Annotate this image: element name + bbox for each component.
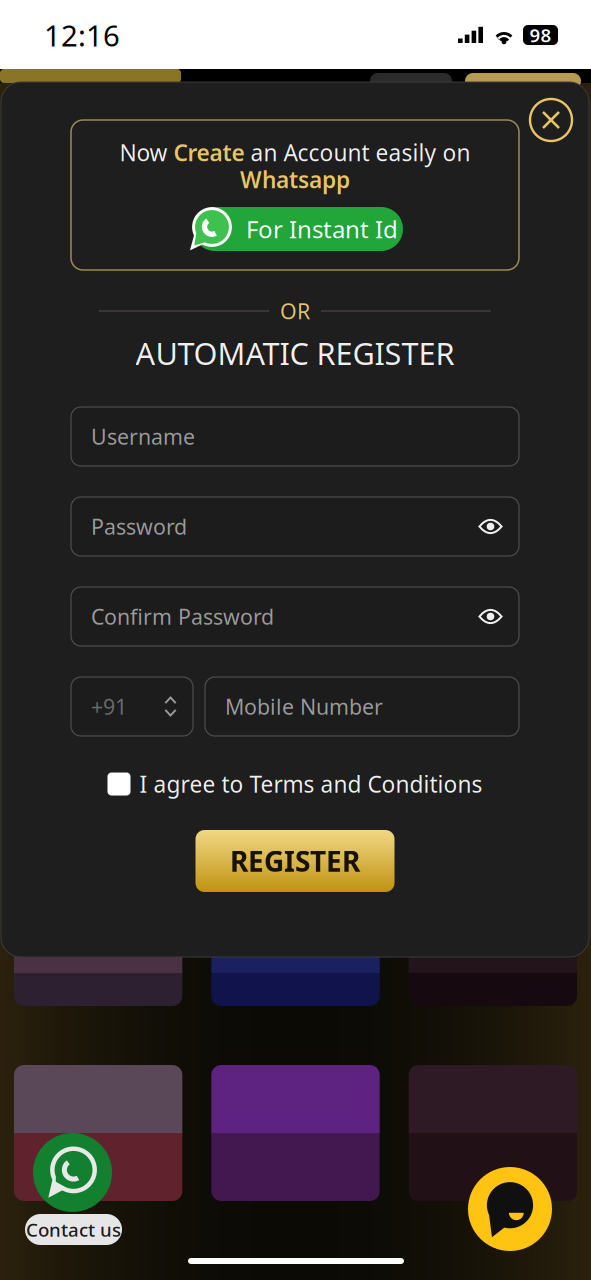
- staticText: an Account easily on: [244, 137, 470, 167]
- button[interactable]: Casino game: [211, 1065, 380, 1201]
- staticText: Mobile Number: [225, 692, 383, 721]
- button[interactable]: Casino game: [14, 940, 182, 1006]
- button[interactable]: Chat on WhatsApp: [33, 1133, 112, 1212]
- staticText: Confirm Password: [91, 602, 274, 631]
- button[interactable]: I agree to Terms and Conditions: [107, 766, 482, 802]
- staticText: +91: [91, 692, 127, 721]
- button[interactable]: Casino game: [409, 1065, 577, 1201]
- staticText: OR: [280, 297, 310, 325]
- button[interactable]: Casino game: [409, 940, 577, 1006]
- button[interactable]: Open support chat: [468, 1167, 552, 1251]
- staticText: I agree to Terms and Conditions: [139, 769, 482, 799]
- staticText: Password: [91, 512, 187, 541]
- staticText: 12:16: [44, 15, 120, 54]
- button[interactable]: REGISTER: [195, 830, 394, 892]
- button[interactable]: Show password: [478, 517, 503, 535]
- staticText: Username: [91, 422, 195, 451]
- staticText: Whatsapp: [240, 164, 350, 194]
- button[interactable]: Show password: [478, 607, 503, 625]
- button[interactable]: Casino game: [211, 940, 380, 1006]
- button[interactable]: Contact us: [25, 1214, 122, 1245]
- staticText: 98: [529, 23, 551, 47]
- staticText: Now: [119, 137, 173, 167]
- staticText: Create: [173, 137, 244, 167]
- staticText: For Instant Id: [246, 213, 398, 245]
- button[interactable]: For Instant Id: [188, 207, 403, 251]
- staticText: REGISTER: [230, 842, 360, 880]
- button[interactable]: Close: [530, 99, 572, 141]
- staticText: AUTOMATIC REGISTER: [135, 333, 454, 373]
- button[interactable]: Casino game: [14, 1065, 182, 1201]
- staticText: Contact us: [26, 1217, 121, 1242]
